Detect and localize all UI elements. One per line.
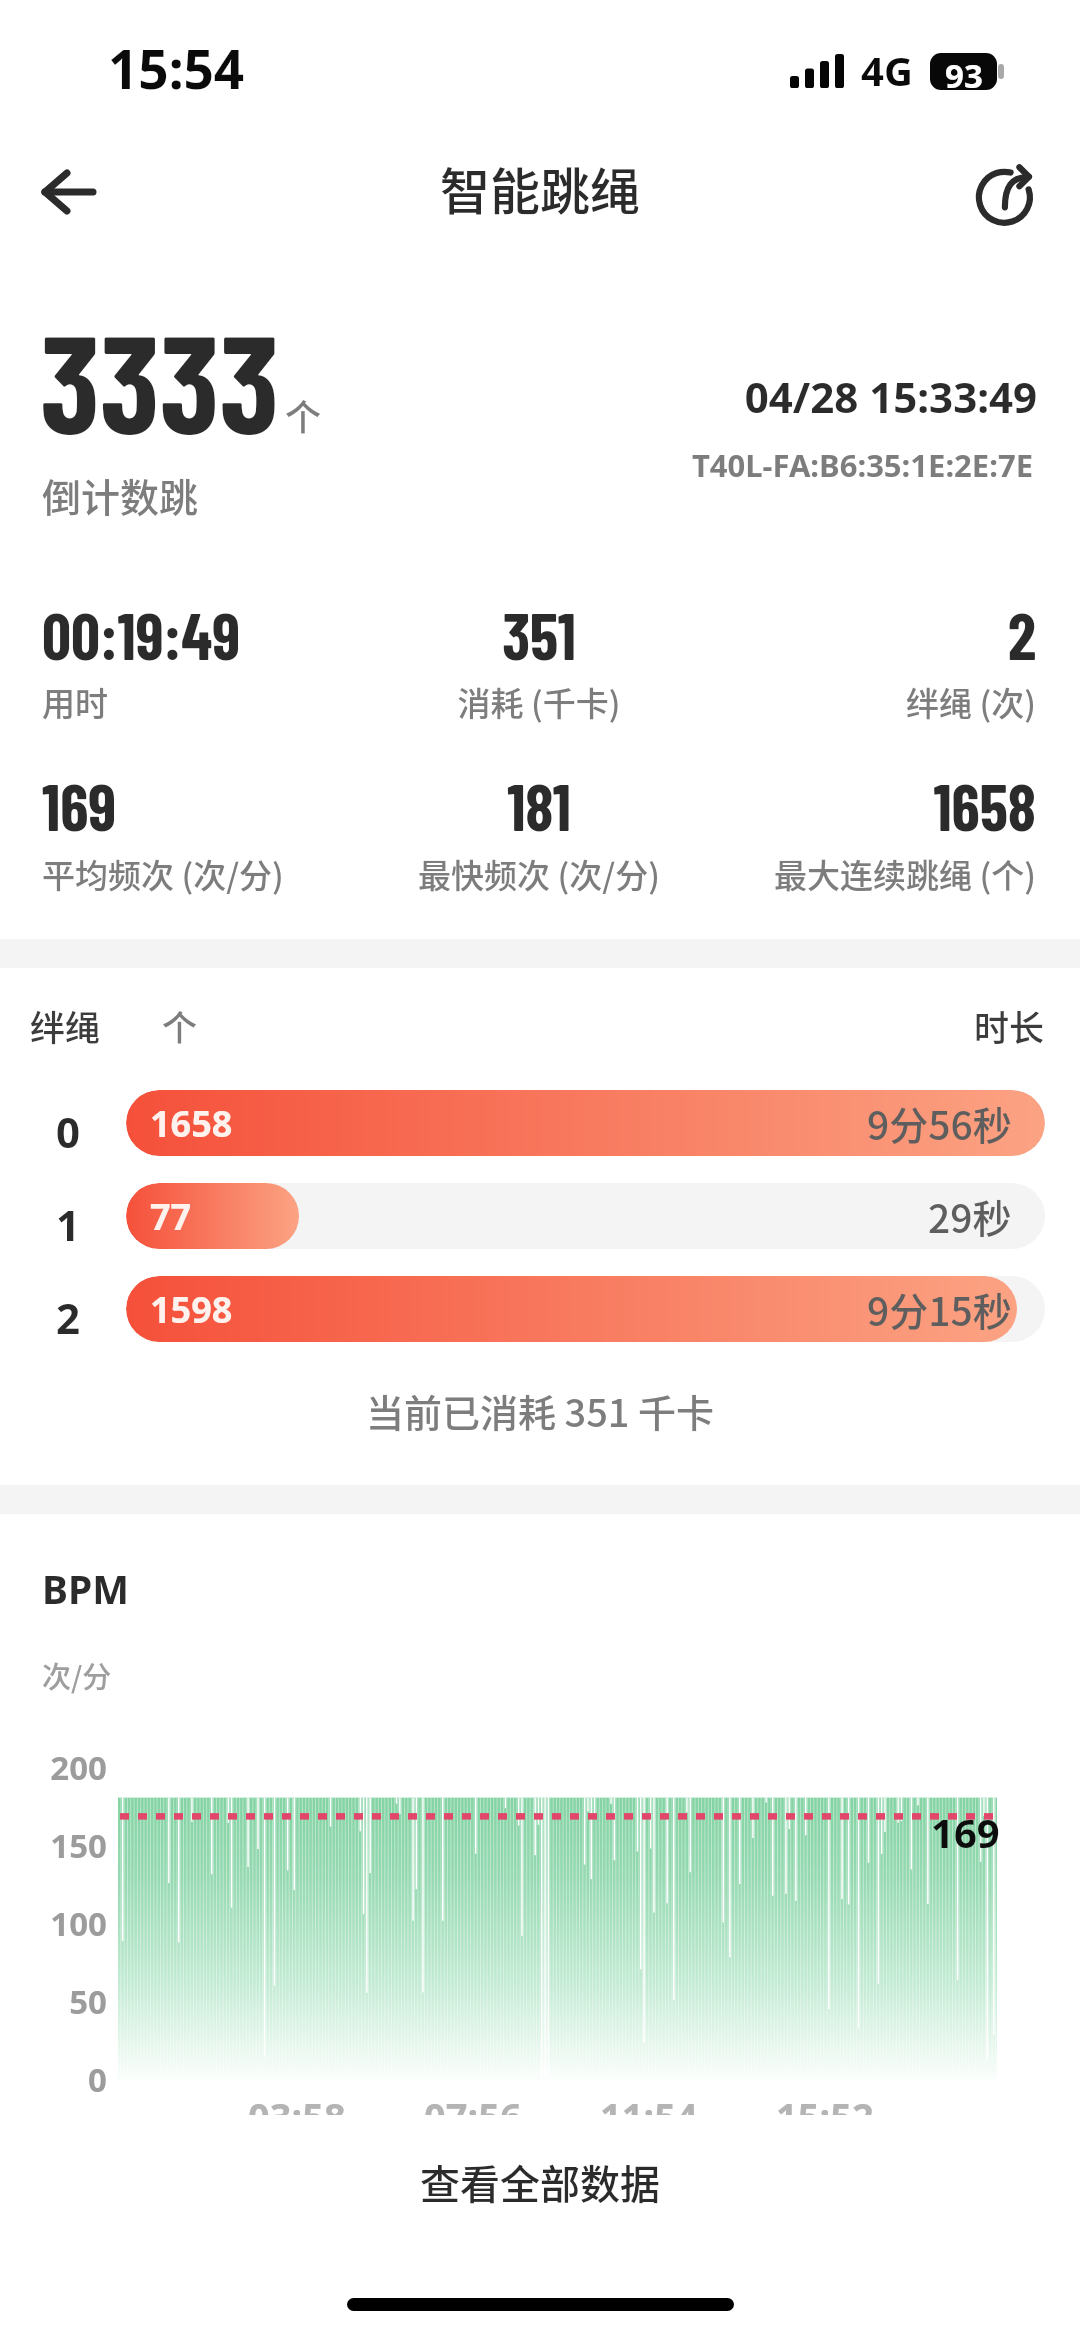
staticText: 150 — [0, 1823, 107, 1868]
staticText: 时长 — [0, 1000, 1044, 1051]
staticText: 9分56秒 — [867, 1095, 1012, 1151]
staticText: 181 — [42, 767, 1036, 844]
staticText: 次/分 — [42, 1654, 112, 1696]
staticText: 0 — [0, 2057, 107, 2102]
staticText: T40L-FA:B6:35:1E:2E:7E — [0, 444, 1033, 486]
staticText: 1658 — [150, 1099, 233, 1148]
staticText: 15:54 — [108, 32, 245, 104]
staticText: 查看全部数据 — [420, 2153, 660, 2211]
staticText: 07:56 — [424, 2090, 522, 2115]
staticText: 2 — [42, 596, 1036, 673]
staticText: 个 — [162, 1000, 198, 1051]
staticText: 1 — [36, 1196, 100, 1253]
staticText: 93 — [945, 53, 983, 90]
staticText: 77 — [150, 1192, 192, 1241]
staticText: 351 — [42, 596, 1036, 673]
staticText: 03:58 — [248, 2090, 346, 2115]
staticText: 个 — [285, 389, 322, 441]
staticText: 200 — [0, 1745, 107, 1790]
staticText: 3333 — [40, 297, 279, 461]
staticText: 智能跳绳 — [440, 152, 640, 224]
staticText: 倒计数跳 — [42, 467, 199, 523]
staticText: 平均频次 (次/分) — [42, 850, 1036, 898]
staticText: BPM — [42, 1562, 129, 1615]
staticText: 29秒 — [928, 1188, 1012, 1244]
staticText: 当前已消耗 351 千卡 — [0, 1383, 1080, 1438]
button[interactable]: Share — [954, 145, 1054, 257]
staticText: 100 — [0, 1901, 107, 1946]
staticText: 绊绳 (次) — [42, 678, 1036, 726]
staticText: 1598 — [150, 1285, 233, 1334]
button[interactable]: 查看全部数据 — [0, 2132, 1080, 2232]
staticText: 0 — [36, 1103, 100, 1160]
staticText: 最快频次 (次/分) — [42, 850, 1036, 898]
staticText: 9分15秒 — [867, 1281, 1012, 1337]
staticText: 消耗 (千卡) — [42, 678, 1036, 726]
staticText: 绊绳 — [30, 1000, 101, 1051]
staticText: 15:52 — [776, 2090, 874, 2115]
staticText: 最大连续跳绳 (个) — [42, 850, 1036, 898]
staticText: 4G — [861, 43, 913, 97]
staticText: 2 — [36, 1289, 100, 1346]
staticText: 1658 — [42, 767, 1036, 844]
staticText: 用时 — [42, 678, 1036, 726]
staticText: 169 — [931, 1805, 1000, 1859]
staticText: 50 — [0, 1979, 107, 2024]
staticText: 169 — [42, 767, 1036, 844]
button[interactable]: Back — [16, 136, 122, 248]
staticText: 11:54 — [600, 2090, 698, 2115]
staticText: 04/28 15:33:49 — [0, 368, 1037, 425]
staticText: 00:19:49 — [42, 596, 1036, 673]
